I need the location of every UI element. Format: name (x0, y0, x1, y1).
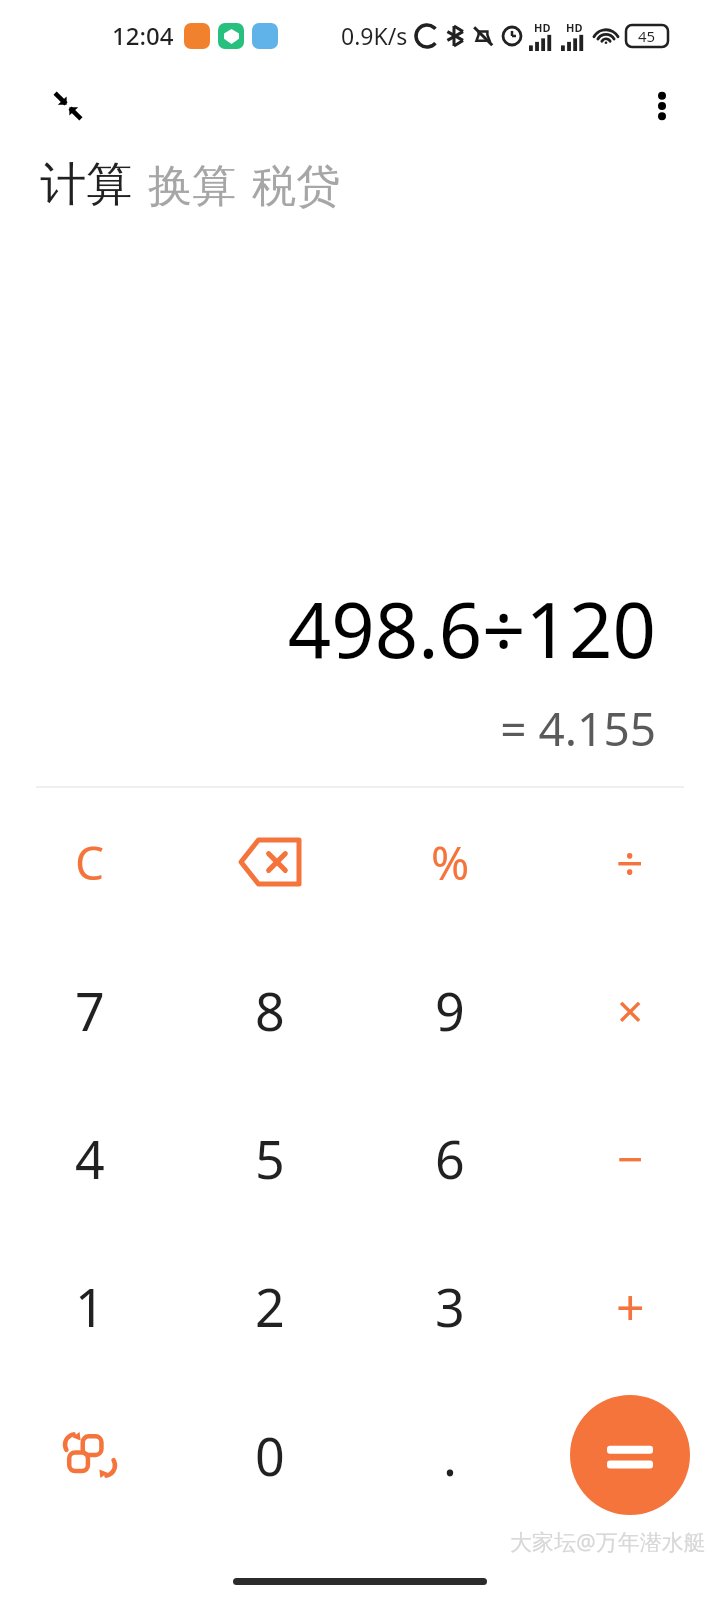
staticText: 45 (638, 26, 656, 46)
button[interactable]: 6 (360, 1084, 540, 1232)
button[interactable]: Collapse (40, 78, 96, 134)
staticText: HD (566, 20, 583, 35)
staticText: ÷ (616, 830, 644, 895)
button[interactable]: C (0, 788, 180, 936)
button[interactable]: 9 (360, 936, 540, 1084)
button[interactable]: Convert (0, 1380, 180, 1530)
button[interactable]: 4 (0, 1084, 180, 1232)
staticText: C (75, 831, 105, 894)
button[interactable]: 计算 (40, 156, 140, 214)
staticText: 6 (435, 1123, 465, 1194)
staticText: − (617, 1127, 644, 1190)
button[interactable]: 1 (0, 1232, 180, 1380)
staticText: 大家坛@万年潜水艇 (510, 1526, 706, 1556)
staticText: 计算 (40, 156, 132, 214)
button[interactable]: 2 (180, 1232, 360, 1380)
button[interactable]: + (540, 1232, 720, 1380)
staticText: 8 (255, 975, 285, 1046)
button[interactable]: Equals (570, 1395, 690, 1515)
staticText: 0 (255, 1420, 285, 1491)
button[interactable]: Backspace (180, 788, 360, 936)
staticText: % (431, 831, 470, 894)
staticText: 4 (75, 1123, 105, 1194)
button[interactable]: 8 (180, 936, 360, 1084)
button[interactable]: 3 (360, 1232, 540, 1380)
button[interactable]: More options (634, 78, 690, 134)
button[interactable]: 5 (180, 1084, 360, 1232)
button[interactable]: − (540, 1084, 720, 1232)
staticText: + (616, 1272, 645, 1340)
button[interactable]: 税贷 (244, 159, 348, 214)
button[interactable]: 换算 (140, 159, 244, 214)
button[interactable]: . (360, 1380, 540, 1530)
staticText: × (617, 979, 644, 1042)
button[interactable]: × (540, 936, 720, 1084)
button[interactable]: ÷ (540, 788, 720, 936)
staticText: 税贷 (252, 159, 340, 214)
staticText: 1 (75, 1271, 105, 1342)
staticText: 498.6÷120 (287, 577, 656, 681)
staticText: 7 (75, 975, 105, 1046)
button[interactable]: 0 (180, 1380, 360, 1530)
staticText: 换算 (148, 159, 236, 214)
staticText: . (443, 1420, 457, 1491)
button[interactable]: % (360, 788, 540, 936)
staticText: HD (534, 20, 551, 35)
staticText: 0.9K/s (341, 20, 408, 51)
staticText: = 4.155 (500, 697, 656, 760)
staticText: 2 (255, 1271, 285, 1342)
staticText: 3 (435, 1271, 465, 1342)
staticText: 9 (435, 975, 465, 1046)
staticText: 5 (255, 1123, 285, 1194)
staticText: 12:04 (112, 19, 174, 52)
button[interactable]: 7 (0, 936, 180, 1084)
